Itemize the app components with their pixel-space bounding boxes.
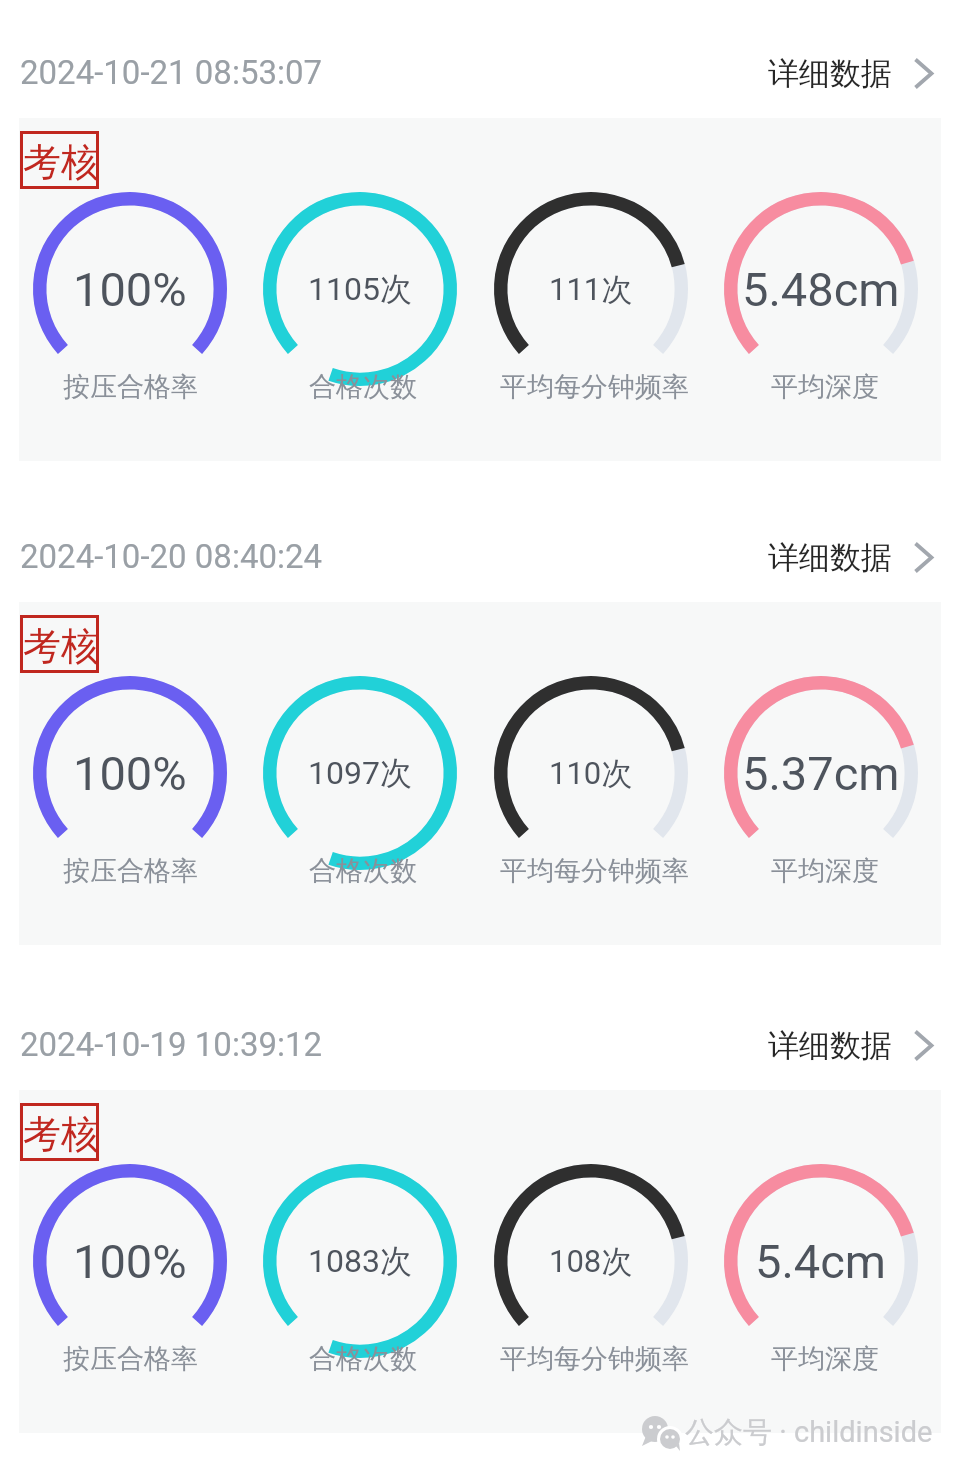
staticText: 公众号 · childinside	[685, 1414, 933, 1451]
staticText: 考核	[23, 1110, 99, 1158]
staticText: 平均深度	[771, 854, 879, 888]
staticText: 考核	[23, 138, 99, 186]
button[interactable]: 详细数据	[756, 1014, 946, 1076]
button[interactable]: 考核	[19, 118, 941, 461]
staticText: 1105次	[308, 269, 412, 309]
staticText: 110次	[549, 754, 633, 793]
button[interactable]: 详细数据	[756, 42, 946, 104]
staticText: 平均每分钟频率	[500, 854, 689, 888]
other: 详细数据	[913, 541, 934, 574]
staticText: 2024-10-19 10:39:12	[20, 1025, 323, 1064]
staticText: 详细数据	[768, 538, 892, 577]
button[interactable]: 考核	[19, 602, 941, 945]
staticText: 平均每分钟频率	[500, 370, 689, 404]
staticText: 平均深度	[771, 370, 879, 404]
staticText: 考核	[23, 622, 99, 670]
staticText: 按压合格率	[63, 370, 198, 404]
staticText: 合格次数	[309, 370, 417, 404]
staticText: 1097次	[308, 753, 412, 793]
staticText: 2024-10-21 08:53:07	[20, 53, 323, 92]
other: 详细数据	[913, 1029, 934, 1062]
staticText: 合格次数	[309, 854, 417, 888]
staticText: 5.4cm	[755, 1234, 887, 1289]
button[interactable]: 考核	[19, 1090, 941, 1433]
staticText: 100%	[73, 746, 187, 801]
staticText: 108次	[549, 1242, 633, 1281]
staticText: 按压合格率	[63, 1342, 198, 1376]
staticText: 平均每分钟频率	[500, 1342, 689, 1376]
staticText: 按压合格率	[63, 854, 198, 888]
staticText: 详细数据	[768, 54, 892, 93]
staticText: 平均深度	[771, 1342, 879, 1376]
staticText: 5.48cm	[742, 262, 900, 317]
staticText: 2024-10-20 08:40:24	[20, 537, 323, 576]
staticText: 详细数据	[768, 1026, 892, 1065]
other: 详细数据	[913, 57, 934, 90]
staticText: 100%	[73, 262, 187, 317]
staticText: 100%	[73, 1234, 187, 1289]
button[interactable]: 详细数据	[756, 526, 946, 588]
staticText: 111次	[549, 270, 633, 309]
staticText: 合格次数	[309, 1342, 417, 1376]
staticText: 5.37cm	[742, 746, 900, 801]
staticText: 1083次	[308, 1241, 412, 1281]
